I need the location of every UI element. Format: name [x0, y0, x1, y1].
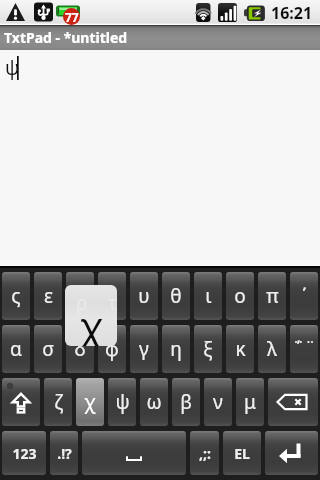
button[interactable]: θ: [162, 272, 190, 320]
button[interactable]: ο: [226, 272, 254, 320]
button[interactable]: τ: [98, 272, 126, 320]
staticText: τ: [107, 283, 117, 309]
staticText: .!?: [57, 444, 72, 463]
staticText: TxtPad - *untitled: [4, 28, 128, 47]
button[interactable]: δ: [66, 325, 94, 373]
staticText: δ: [74, 336, 86, 362]
staticText: χ: [80, 299, 103, 346]
staticText: ω: [146, 389, 162, 415]
button[interactable]: ρ: [66, 272, 94, 320]
staticText: κ: [235, 336, 246, 362]
button[interactable]: ,;:: [190, 431, 219, 475]
button[interactable]: Enter: [265, 431, 318, 475]
button[interactable]: 123: [2, 431, 46, 475]
staticText: β: [180, 389, 192, 415]
staticText: υ: [138, 283, 150, 309]
button[interactable]: ω: [140, 378, 168, 426]
staticText: μ: [244, 389, 256, 415]
button[interactable]: .!?: [50, 431, 78, 475]
staticText: ι: [205, 283, 212, 309]
button[interactable]: χ: [76, 378, 104, 426]
button[interactable]: ι: [194, 272, 222, 320]
button[interactable]: ε: [34, 272, 62, 320]
staticText: π: [266, 283, 279, 309]
button[interactable]: α: [2, 325, 30, 373]
staticText: EL: [234, 444, 250, 463]
button[interactable]: β: [172, 378, 200, 426]
button[interactable]: ψ: [108, 378, 136, 426]
button[interactable]: ζ: [44, 378, 72, 426]
button[interactable]: σ: [34, 325, 62, 373]
staticText: λ: [267, 336, 277, 362]
button[interactable]: γ: [130, 325, 158, 373]
staticText: 16:21: [271, 2, 313, 24]
staticText: ρ: [74, 283, 86, 309]
staticText: ο: [234, 283, 246, 309]
button[interactable]: π: [258, 272, 286, 320]
staticText: α: [10, 336, 22, 362]
button[interactable]: Shift: [2, 378, 40, 426]
staticText: 123: [12, 444, 37, 463]
staticText: ξ: [203, 336, 213, 362]
staticText: χ: [84, 389, 96, 415]
staticText: η: [170, 336, 182, 362]
staticText: θ: [170, 283, 182, 309]
button[interactable]: φ: [98, 325, 126, 373]
staticText: φ: [105, 336, 119, 362]
staticText: ΄: [302, 283, 307, 309]
button[interactable]: κ: [226, 325, 254, 373]
staticText: ρ: [76, 290, 88, 316]
staticText: ψ: [115, 389, 130, 415]
button[interactable]: λ: [258, 325, 286, 373]
button[interactable]: υ: [130, 272, 158, 320]
staticText: ζ: [54, 389, 63, 415]
staticText: ψ: [5, 55, 20, 81]
staticText: τ: [108, 290, 117, 316]
button[interactable]: Delete: [268, 378, 318, 426]
staticText: ,;:: [199, 444, 211, 463]
button[interactable]: ΄: [290, 272, 318, 320]
button[interactable]: ξ: [194, 325, 222, 373]
button[interactable]: EL: [223, 431, 261, 475]
button[interactable]: η: [162, 325, 190, 373]
staticText: ΅¨: [292, 336, 316, 362]
staticText: ν: [213, 389, 223, 415]
staticText: 77: [65, 9, 79, 25]
staticText: ς: [11, 283, 21, 309]
staticText: γ: [139, 336, 149, 362]
button[interactable]: ς: [2, 272, 30, 320]
staticText: ε: [44, 283, 53, 309]
button[interactable]: ν: [204, 378, 232, 426]
staticText: σ: [42, 336, 54, 362]
button[interactable]: Space: [82, 431, 186, 475]
button[interactable]: ΅¨: [290, 325, 318, 373]
button[interactable]: μ: [236, 378, 264, 426]
